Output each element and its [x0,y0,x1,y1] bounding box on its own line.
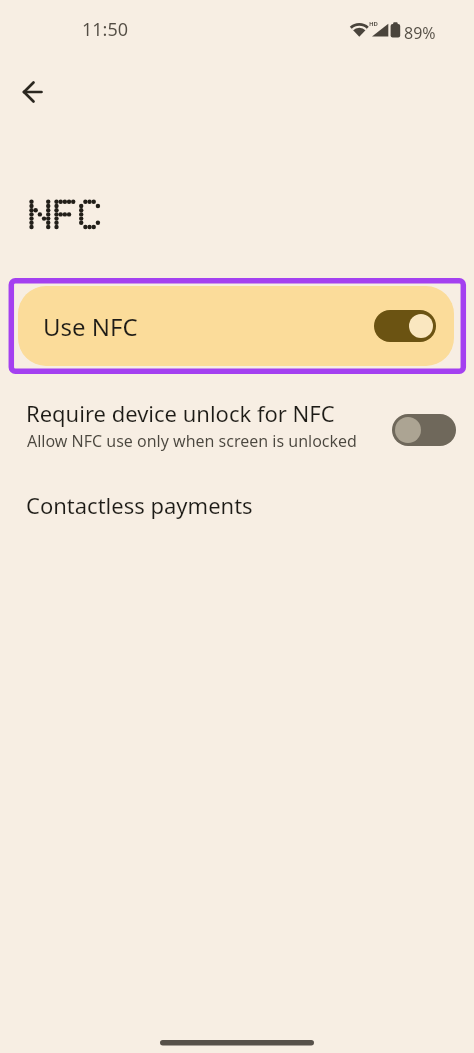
staticText: HD [369,20,378,28]
button[interactable]: Contactless payments [0,480,474,536]
button[interactable]: Use NFC [18,286,454,366]
staticText: 11:50 [82,17,129,42]
staticText: Use NFC [43,310,138,343]
staticText: 89% [404,22,436,44]
staticText: Require device unlock for NFC [26,398,335,428]
staticText: Contactless payments [26,490,253,520]
button[interactable]: Require device unlock for NFC [0,396,474,466]
button[interactable] [13,72,53,112]
staticText: Allow NFC use only when screen is unlock… [27,430,357,452]
